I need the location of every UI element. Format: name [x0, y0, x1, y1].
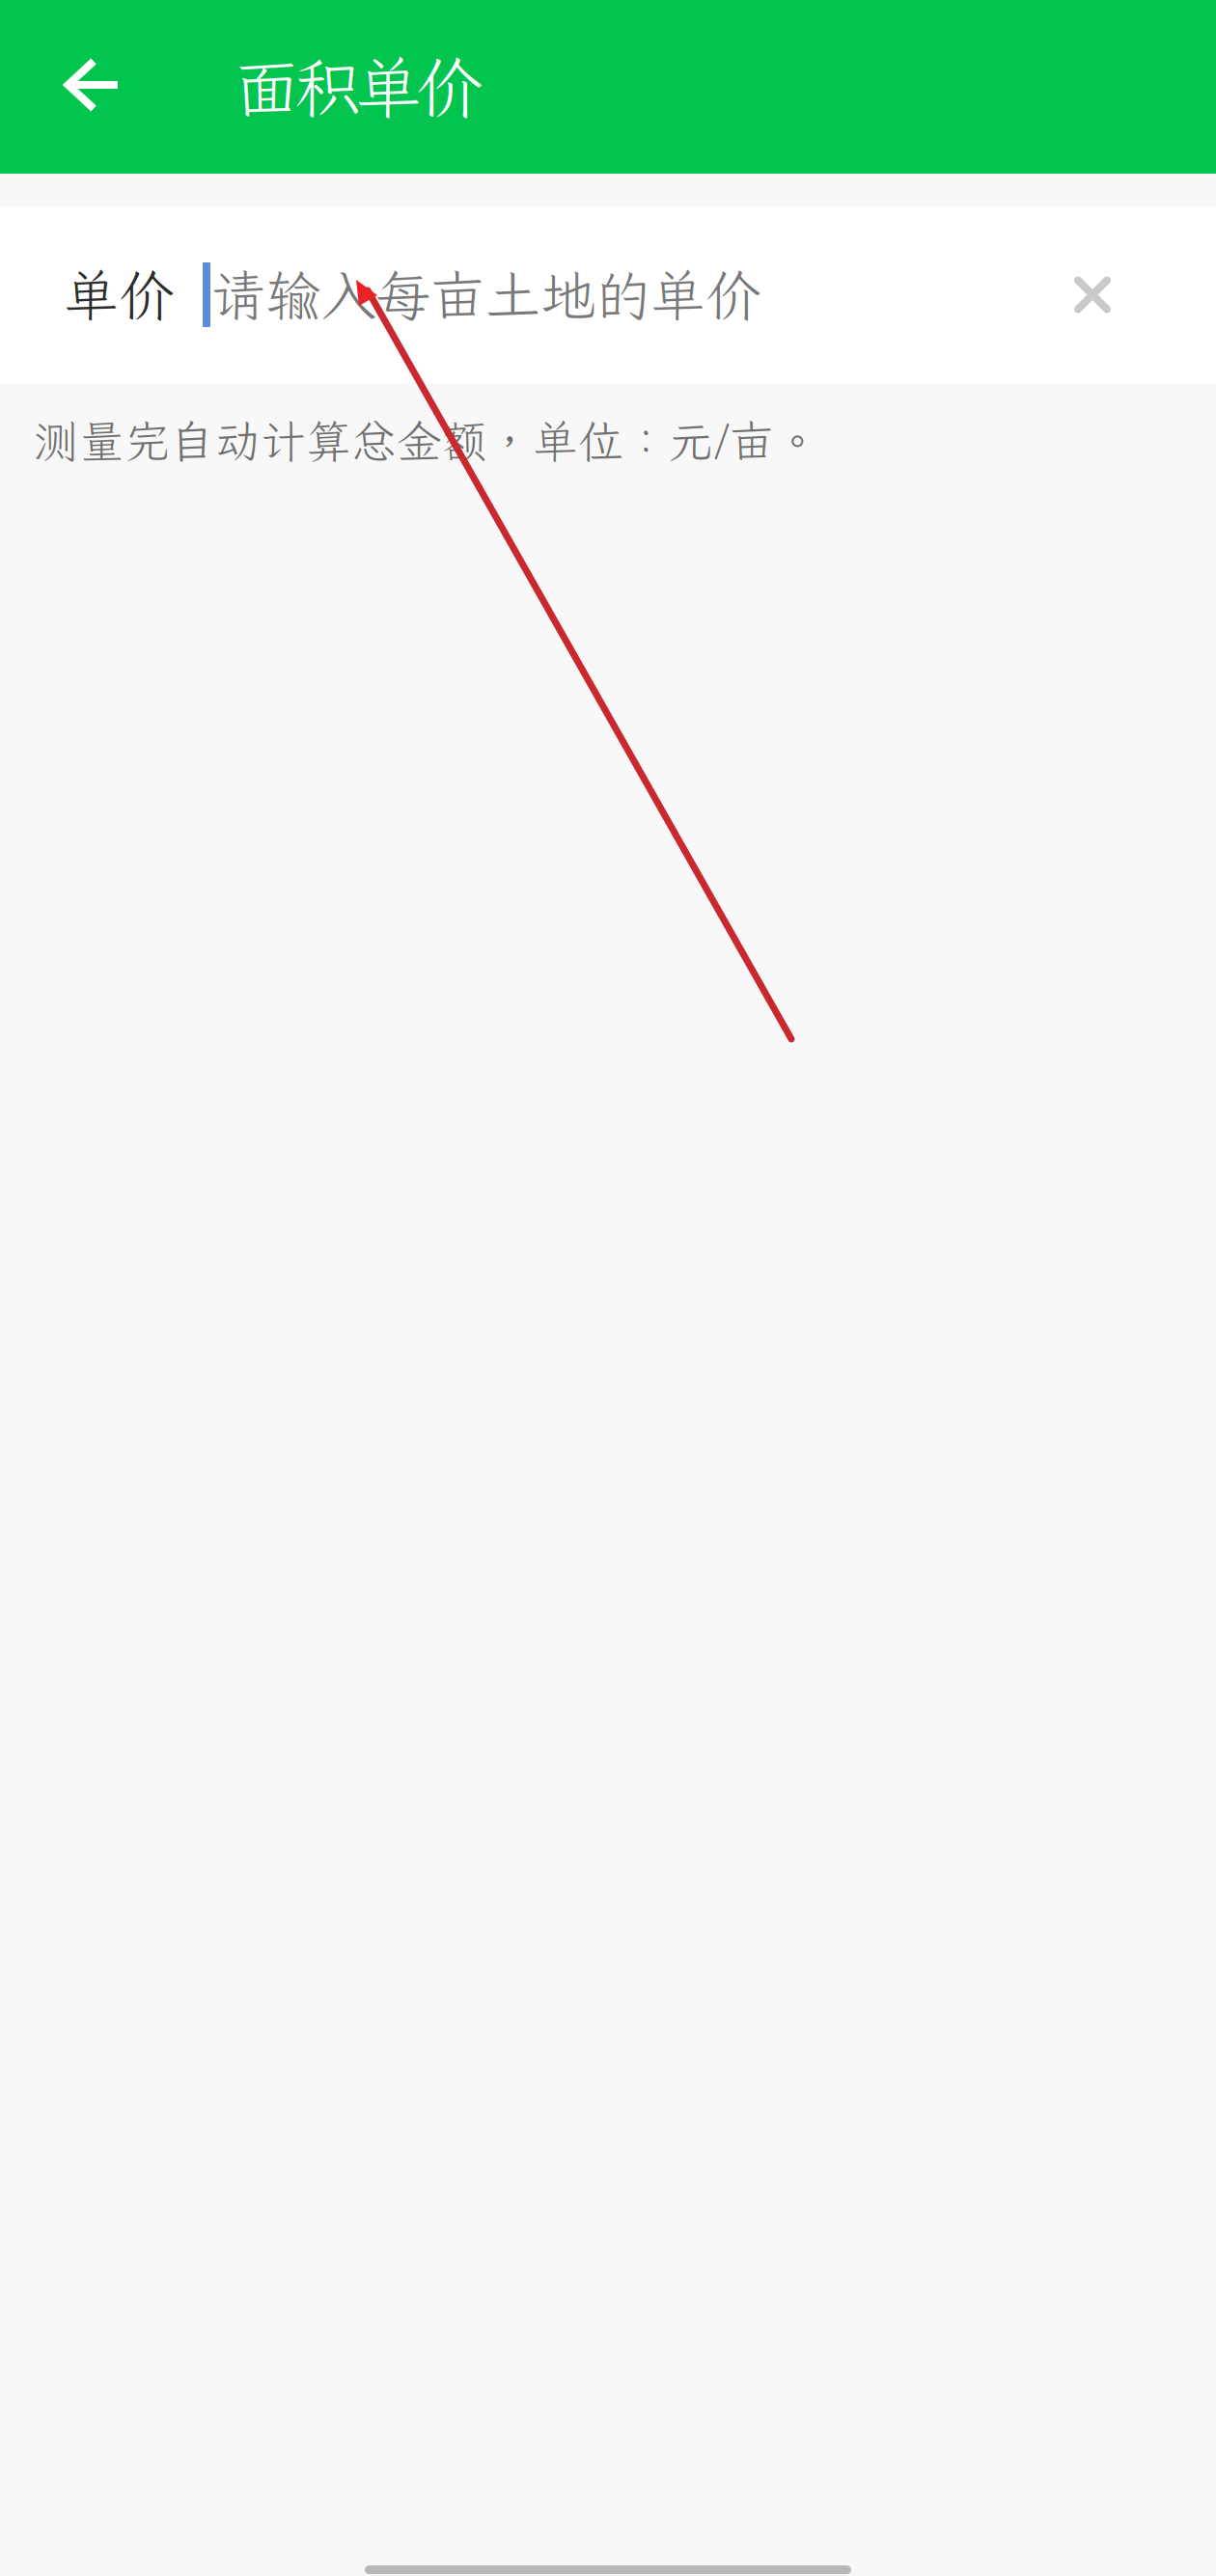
staticText: 请输入每亩土地的单价: [210, 258, 760, 331]
button[interactable]: Clear: [1054, 256, 1131, 333]
staticText: 测量完自动计算总金额，单位：元/亩。: [34, 411, 820, 470]
button[interactable]: Back: [0, 0, 185, 174]
staticText: 单价: [64, 258, 174, 331]
staticText: 面积单价: [234, 43, 483, 131]
